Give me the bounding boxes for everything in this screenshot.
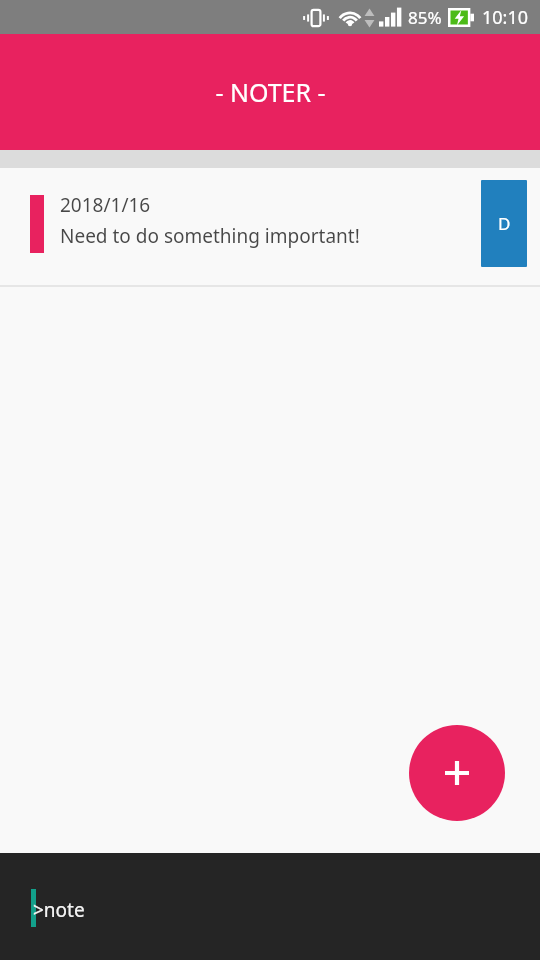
staticText: Need to do something important! xyxy=(60,223,360,249)
button[interactable]: 2018/1/16 xyxy=(0,168,540,285)
button[interactable]: Add note xyxy=(409,725,505,821)
staticText: 85% xyxy=(408,6,442,29)
button[interactable]: >note xyxy=(0,853,540,960)
staticText: D xyxy=(498,212,511,235)
staticText: - NOTER - xyxy=(215,75,326,109)
staticText: >note xyxy=(33,897,85,923)
staticText: 2018/1/16 xyxy=(60,192,151,218)
button[interactable]: D xyxy=(481,180,527,267)
staticText: 10:10 xyxy=(482,5,529,30)
